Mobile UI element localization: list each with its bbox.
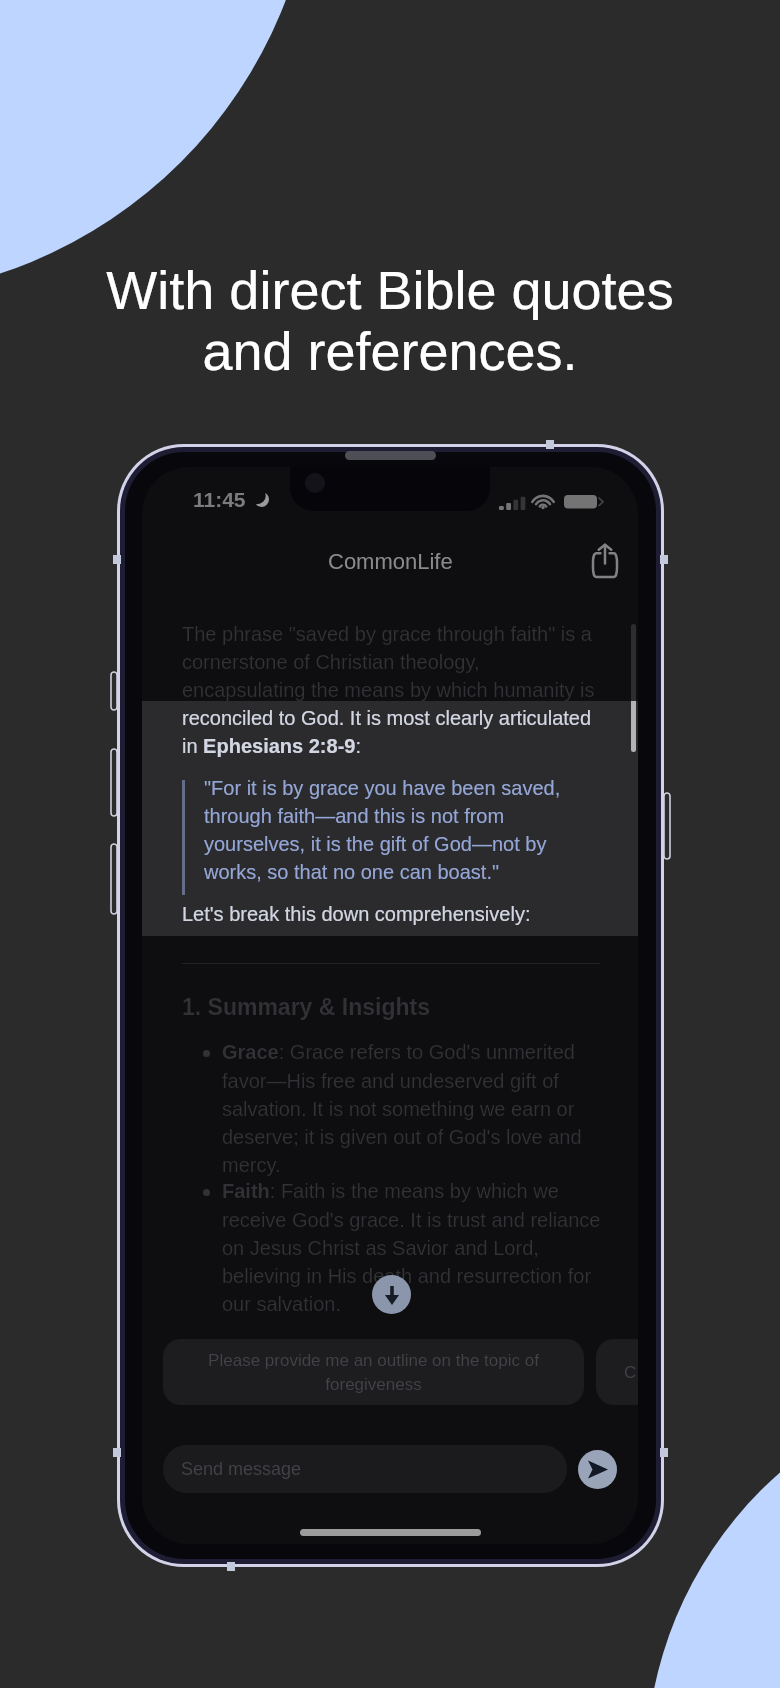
staticText: "For it is by grace you have been saved,… <box>204 777 586 883</box>
staticText: Send message <box>181 1459 302 1479</box>
button[interactable]: CommonLife <box>142 537 638 585</box>
staticText: 11:45 <box>193 488 246 511</box>
staticText: Let's break this down comprehensively: <box>182 903 531 925</box>
button[interactable]: Scroll to bottom <box>372 1275 411 1314</box>
button[interactable]: Send <box>578 1450 617 1489</box>
staticText: Grace: Grace refers to God's unmerited f… <box>222 1041 612 1176</box>
staticText: Please provide me an outline on the topi… <box>181 1351 566 1394</box>
staticText: "For it is by grace you have been saved,… <box>204 777 586 883</box>
button[interactable]: Share <box>581 536 629 584</box>
staticText: The phrase "saved by grace through faith… <box>182 623 602 757</box>
staticText: Let's break this down comprehensively: <box>182 903 531 925</box>
staticText: CommonLife <box>328 549 453 574</box>
button[interactable]: C <box>596 1339 638 1405</box>
staticText: With direct Bible quotes and references. <box>106 260 674 381</box>
staticText: 1. Summary & Insights <box>182 994 430 1020</box>
button[interactable]: Send message <box>163 1445 567 1493</box>
staticText: Faith: Faith is the means by which we re… <box>222 1180 612 1315</box>
staticText: C <box>624 1363 637 1382</box>
button[interactable]: Please provide me an outline on the topi… <box>163 1339 584 1405</box>
staticText: The phrase "saved by grace through faith… <box>182 701 602 757</box>
